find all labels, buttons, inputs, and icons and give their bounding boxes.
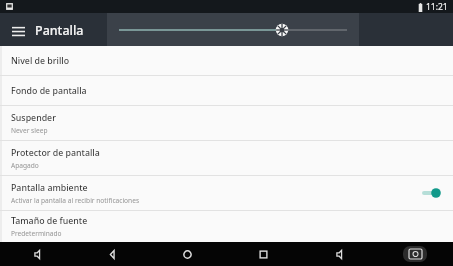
button[interactable]: Protector de pantalla	[0, 141, 453, 175]
staticText: Suspender	[11, 112, 56, 124]
staticText: 11:21	[426, 1, 448, 13]
button[interactable]: Back	[75, 242, 150, 266]
staticText: Pantalla ambiente	[11, 182, 88, 194]
staticText: Tamaño de fuente	[11, 215, 88, 227]
staticText: Never sleep	[11, 126, 48, 135]
staticText: Fondo de pantalla	[11, 85, 87, 97]
staticText: Predeterminado	[11, 229, 62, 238]
button[interactable]: Home	[150, 242, 225, 266]
button[interactable]: Brightness slider	[107, 13, 359, 46]
button[interactable]: Recent apps	[225, 242, 301, 266]
button[interactable]: Pantalla ambiente	[0, 176, 453, 210]
button[interactable]: Ambient display toggle	[420, 184, 442, 202]
button[interactable]: Screenshot	[377, 242, 453, 266]
button[interactable]: Tamaño de fuente	[0, 211, 453, 242]
button[interactable]: Volume up	[301, 242, 377, 266]
staticText: Pantalla	[35, 22, 84, 39]
button[interactable]: Open navigation menu	[7, 19, 29, 41]
staticText: Activar la pantalla al recibir notificac…	[11, 196, 140, 205]
button[interactable]: Suspender	[0, 106, 453, 140]
staticText: Protector de pantalla	[11, 147, 100, 159]
button[interactable]: Volume down	[0, 242, 75, 266]
button[interactable]: Fondo de pantalla	[0, 76, 453, 105]
staticText: Nivel de brillo	[11, 55, 70, 67]
button[interactable]: Nivel de brillo	[0, 46, 453, 75]
staticText: Apagado	[11, 161, 39, 170]
